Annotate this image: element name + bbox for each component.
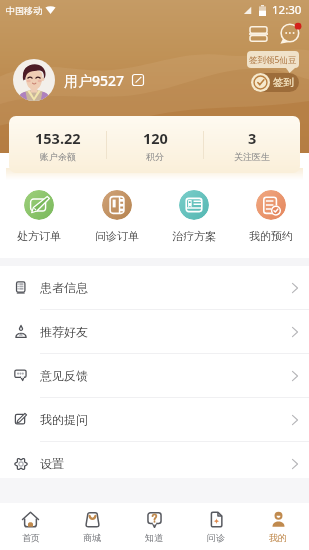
staticText: 意见反馈 (40, 368, 88, 383)
staticText: 处方订单 (17, 229, 61, 243)
staticText: 账户余额 (40, 151, 76, 162)
staticText: 关注医生 (234, 151, 270, 162)
button[interactable]: 患者信息 (0, 266, 309, 309)
staticText: 我的提问 (40, 412, 88, 427)
button[interactable]: 我的预约 (232, 190, 309, 243)
button[interactable]: 知道 (123, 503, 185, 550)
staticText: 治疗方案 (172, 229, 216, 243)
staticText: 推荐好友 (40, 324, 88, 339)
button[interactable]: 我的提问 (0, 398, 309, 441)
staticText: 签到领5仙豆 (249, 54, 297, 66)
staticText: 知道 (145, 532, 163, 543)
button[interactable]: Avatar (13, 59, 55, 101)
button[interactable]: 签到 (251, 73, 299, 92)
staticText: 问诊 (207, 532, 225, 543)
staticText: 积分 (146, 151, 164, 162)
button[interactable]: 设置 (0, 442, 309, 485)
button[interactable]: 处方订单 (0, 190, 78, 243)
button[interactable]: 问诊 (185, 503, 247, 550)
button[interactable]: 问诊订单 (78, 190, 155, 243)
button[interactable]: Messages (277, 19, 305, 47)
staticText: 我的 (269, 532, 287, 543)
staticText: 患者信息 (40, 280, 88, 295)
staticText: 中国移动 (6, 5, 42, 16)
staticText: 12:30 (272, 2, 302, 18)
staticText: 我的预约 (249, 229, 293, 243)
staticText: 3 (248, 128, 257, 148)
staticText: 153.22 (35, 128, 81, 148)
button[interactable]: 治疗方案 (155, 190, 232, 243)
staticText: 商城 (83, 532, 101, 543)
staticText: 首页 (22, 532, 40, 543)
staticText: 问诊订单 (95, 229, 139, 243)
staticText: 120 (143, 128, 168, 148)
button[interactable]: 商城 (61, 503, 123, 550)
button[interactable]: 我的 (247, 503, 309, 550)
button[interactable]: Scan code (244, 20, 272, 48)
button[interactable]: Edit name (130, 72, 146, 88)
staticText: 用户9527 (64, 71, 125, 90)
button[interactable]: 首页 (0, 503, 61, 550)
staticText: 签到 (273, 76, 294, 89)
button[interactable]: 意见反馈 (0, 354, 309, 397)
button[interactable]: 推荐好友 (0, 310, 309, 353)
staticText: 设置 (40, 456, 64, 471)
